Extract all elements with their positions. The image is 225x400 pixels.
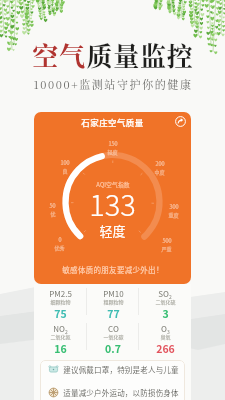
staticText: 建议佩戴口罩，特别是老人与儿童 [63,364,179,375]
staticText: 500 [162,237,172,245]
staticText: 3 [162,306,169,321]
staticText: 133 [89,182,136,224]
staticText: 严重 [161,245,172,252]
staticText: 石家庄空气质量 [81,116,144,128]
staticText: 质量监控 [86,36,194,73]
staticText: 2 [169,293,172,300]
staticText: NO [53,323,65,335]
staticText: 臭氧 [160,333,171,340]
staticText: O [161,323,167,335]
button[interactable]: 适量减少户外运动，以防损伤身体 [48,381,181,400]
staticText: 适量减少户外运动，以防损伤身体 [63,387,179,398]
button[interactable]: 建议佩戴口罩，特别是老人与儿童 [48,360,181,381]
staticText: 150 [108,140,118,148]
staticText: 50 [49,202,56,210]
staticText: 0.7 [105,341,121,356]
staticText: 优 [50,210,56,217]
staticText: 二氧化硫 [155,298,176,305]
staticText: 粗颗粒物 [103,298,124,305]
staticText: 良 [62,167,68,174]
staticText: 2 [65,328,68,335]
staticText: CO [108,323,119,335]
staticText: 重度 [168,211,179,218]
staticText: 轻度 [99,221,126,240]
staticText: 266 [156,341,175,356]
staticText: 一氧化碳 [103,333,124,340]
staticText: 10000+监测站守护你的健康 [33,76,193,92]
staticText: 细颗粒物 [50,298,71,305]
staticText: 中度 [154,168,165,175]
staticText: 75 [54,306,67,321]
staticText: 轻度 [107,148,118,155]
staticText: 二氧化氮 [50,333,71,340]
staticText: PM10 [103,288,124,300]
staticText: 空气 [32,36,86,73]
staticText: SO [158,288,169,300]
staticText: 16 [54,341,67,356]
staticText: 300 [169,203,179,211]
staticText: 3 [167,328,170,335]
staticText: PM2.5 [49,288,72,300]
staticText: 200 [155,160,165,168]
staticText: 77 [107,306,120,321]
staticText: AQI空气指数 [96,180,130,188]
staticText: 优秀 [54,244,65,251]
button[interactable]: Share [175,116,186,127]
staticText: 0 [58,236,62,244]
staticText: 100 [60,159,70,167]
staticText: 敏感体质的朋友要减少外出！ [62,264,164,275]
